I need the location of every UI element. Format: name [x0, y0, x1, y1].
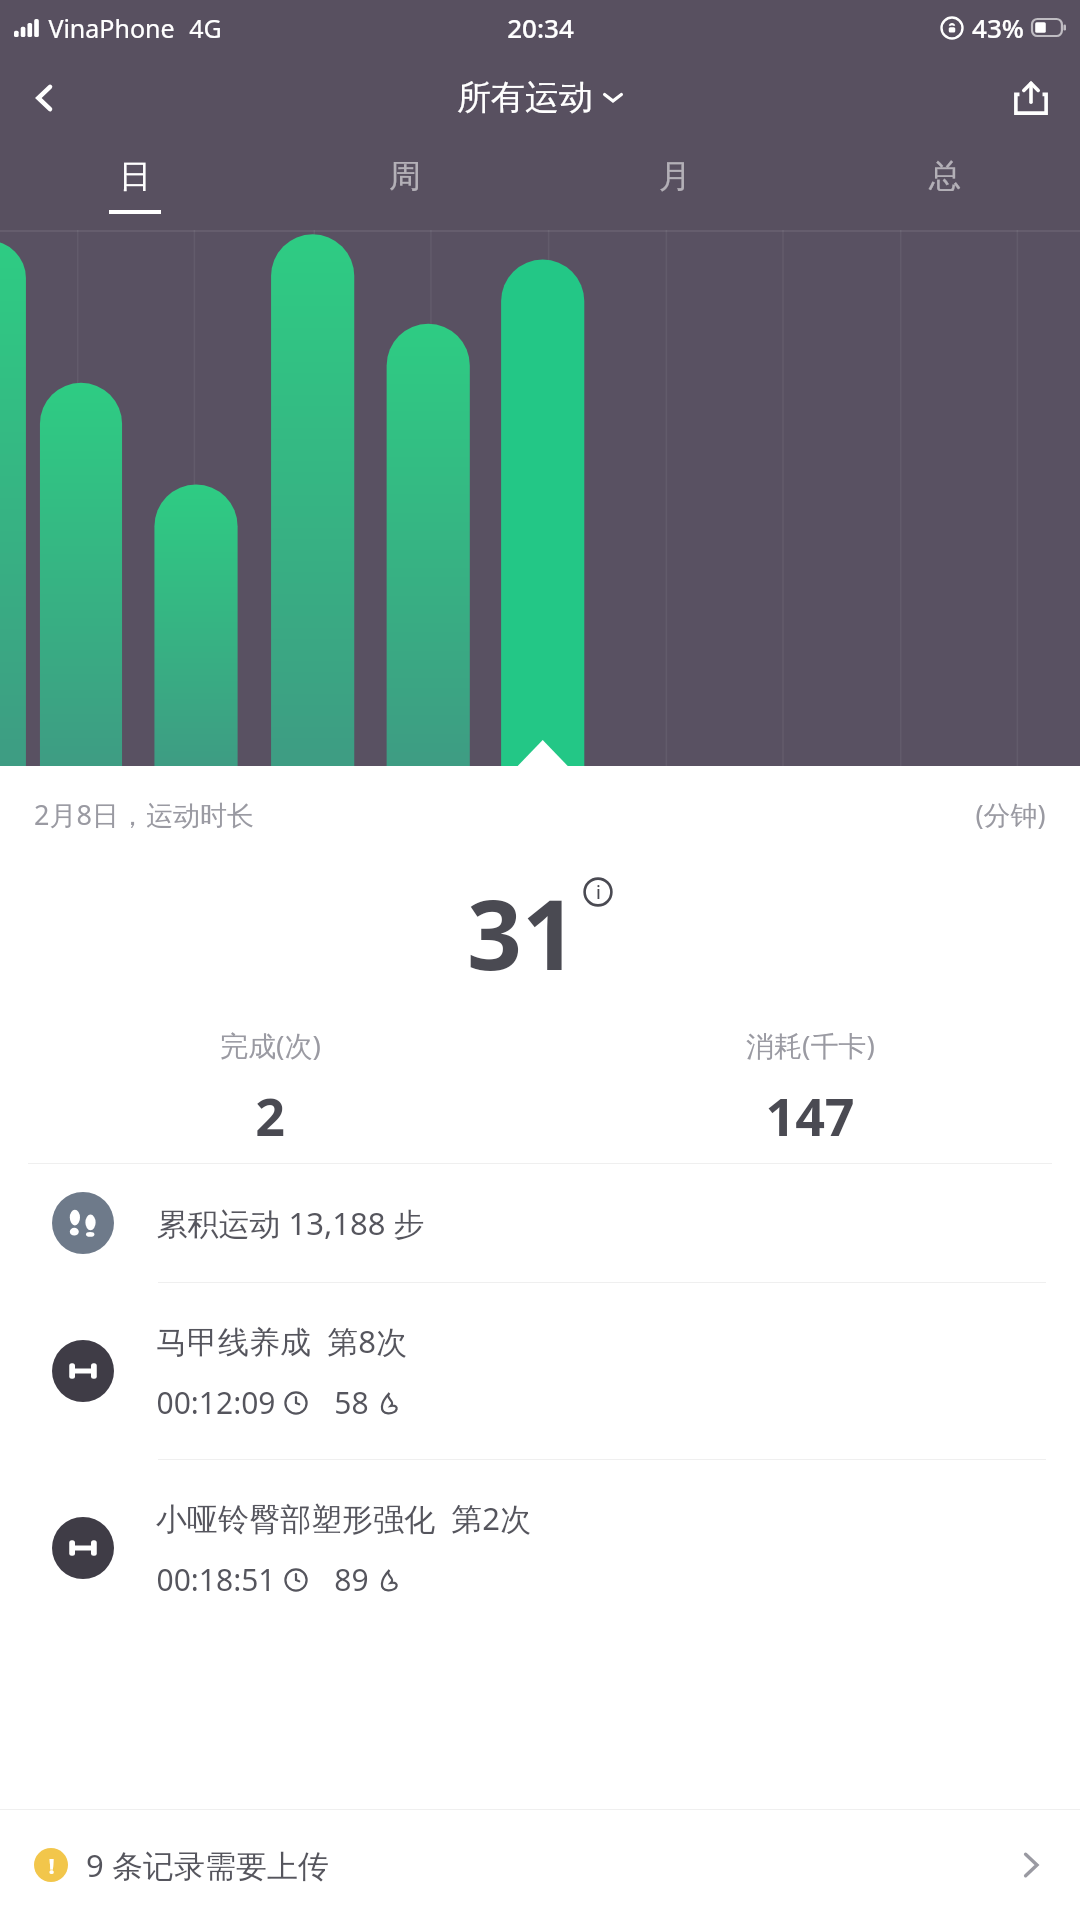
button[interactable]: [0, 230, 1080, 766]
button[interactable]: 消耗(千卡): [540, 1026, 1080, 1151]
staticText: 31: [467, 867, 577, 998]
button[interactable]: Share: [996, 63, 1066, 133]
staticText: 2: [255, 1080, 285, 1151]
staticText: 周: [389, 156, 421, 196]
button[interactable]: 马甲线养成 第8次: [0, 1283, 1080, 1459]
staticText: 马甲线养成 第8次: [156, 1320, 407, 1362]
staticText: 9 条记录需要上传: [86, 1844, 329, 1886]
button[interactable]: 月: [540, 140, 810, 230]
staticText: 完成(次): [220, 1026, 321, 1064]
staticText: 147: [765, 1080, 855, 1151]
staticText: 月: [659, 156, 691, 196]
button[interactable]: 完成(次): [0, 1026, 540, 1151]
staticText: 58: [334, 1382, 369, 1423]
button[interactable]: 所有运动: [457, 76, 623, 119]
staticText: 总: [929, 156, 961, 196]
staticText: VinaPhone: [48, 11, 175, 45]
staticText: 89: [334, 1559, 369, 1600]
button[interactable]: Back: [10, 63, 80, 133]
staticText: 00:18:51: [156, 1559, 276, 1600]
staticText: 4G: [189, 11, 222, 45]
button[interactable]: 小哑铃臀部塑形强化 第2次: [0, 1460, 1080, 1636]
staticText: 2月8日，运动时长: [34, 796, 254, 833]
staticText: !: [48, 1850, 55, 1880]
staticText: 20:34: [507, 10, 574, 45]
staticText: i: [596, 880, 601, 905]
staticText: (分钟): [975, 796, 1046, 833]
staticText: 小哑铃臀部塑形强化 第2次: [156, 1497, 531, 1539]
staticText: 累积运动 13,188 步: [156, 1202, 425, 1244]
staticText: 00:12:09: [156, 1382, 276, 1423]
button[interactable]: Info: [583, 877, 613, 907]
button[interactable]: 总: [810, 140, 1080, 230]
button[interactable]: !: [0, 1810, 1080, 1920]
button[interactable]: 日: [0, 140, 270, 230]
staticText: 43%: [972, 10, 1024, 45]
button[interactable]: 累积运动 13,188 步: [0, 1164, 1080, 1282]
button[interactable]: 周: [270, 140, 540, 230]
staticText: 所有运动: [457, 76, 593, 119]
staticText: 日: [119, 156, 151, 196]
staticText: 消耗(千卡): [746, 1026, 875, 1064]
